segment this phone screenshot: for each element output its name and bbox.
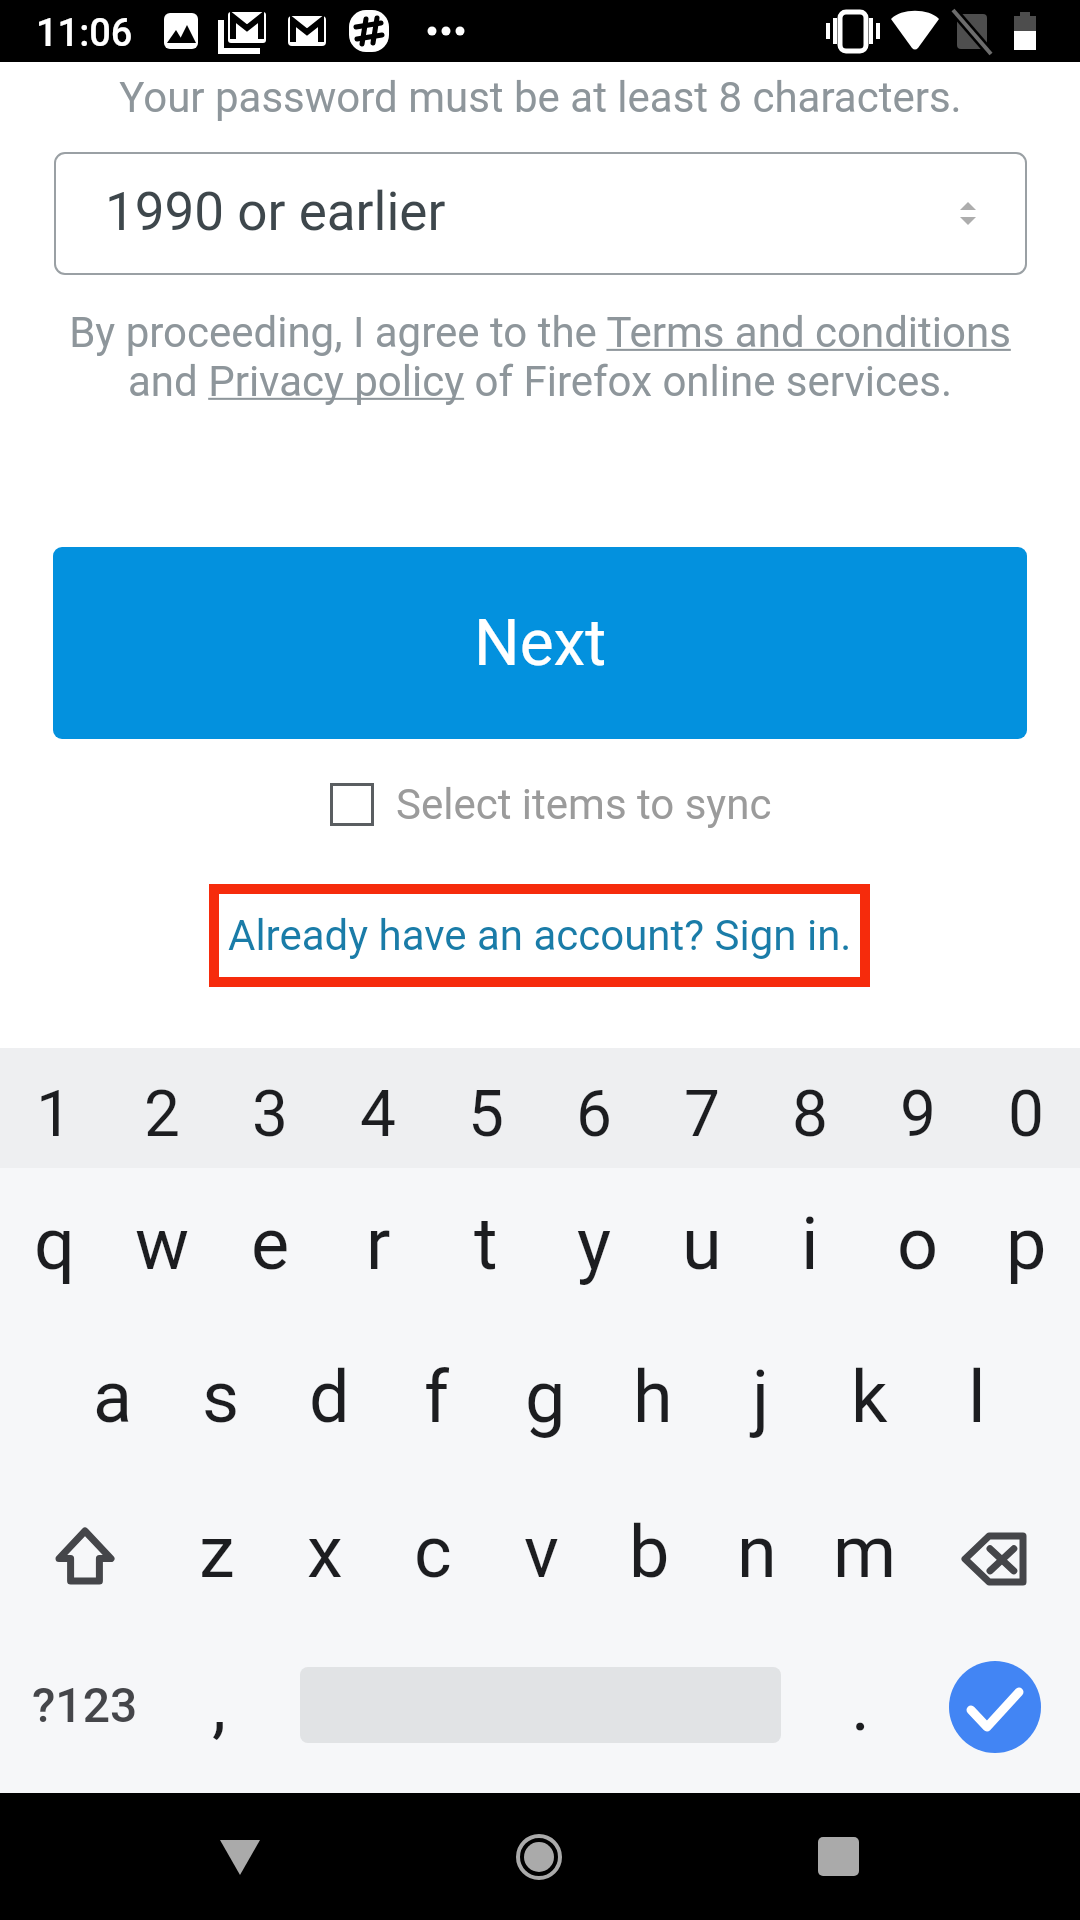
staticText: k bbox=[851, 1355, 888, 1439]
staticText: f bbox=[424, 1355, 450, 1439]
staticText: 1 bbox=[36, 1077, 72, 1152]
button[interactable]: Shift bbox=[10, 1481, 160, 1631]
staticText: Your password must be at least 8 charact… bbox=[119, 73, 962, 122]
staticText: 0 bbox=[1008, 1077, 1044, 1152]
button[interactable]: 1 bbox=[0, 1054, 108, 1174]
staticText: o bbox=[897, 1202, 939, 1286]
staticText: 9 bbox=[900, 1077, 936, 1152]
staticText: n bbox=[737, 1510, 777, 1594]
button[interactable]: 9 bbox=[864, 1054, 972, 1174]
button[interactable]: Next bbox=[53, 547, 1027, 739]
button[interactable]: 5 bbox=[432, 1054, 540, 1174]
staticText: e bbox=[251, 1202, 290, 1286]
button[interactable]: o bbox=[864, 1169, 972, 1319]
staticText: , bbox=[212, 1663, 227, 1747]
staticText: l bbox=[968, 1355, 986, 1439]
staticText: i bbox=[801, 1202, 819, 1286]
button[interactable]: 1990 or earlier bbox=[54, 152, 1027, 275]
button[interactable]: e bbox=[216, 1169, 324, 1319]
staticText: t bbox=[474, 1202, 498, 1286]
staticText: ?123 bbox=[32, 1677, 138, 1733]
button[interactable]: 0 bbox=[972, 1054, 1080, 1174]
button[interactable]: g bbox=[491, 1322, 599, 1472]
button[interactable]: t bbox=[432, 1169, 540, 1319]
button[interactable]: m bbox=[811, 1477, 919, 1627]
staticText: x bbox=[307, 1510, 343, 1594]
button[interactable]: w bbox=[108, 1169, 216, 1319]
button[interactable]: 3 bbox=[216, 1054, 324, 1174]
staticText: . bbox=[851, 1663, 870, 1747]
button[interactable]: a bbox=[59, 1322, 167, 1472]
button[interactable]: y bbox=[540, 1169, 648, 1319]
staticText: y bbox=[577, 1202, 612, 1286]
staticText: p bbox=[1006, 1202, 1047, 1286]
staticText: 6 bbox=[576, 1077, 612, 1152]
button[interactable]: Already have an account? Sign in. bbox=[209, 884, 870, 987]
button[interactable]: u bbox=[648, 1169, 756, 1319]
button[interactable]: k bbox=[815, 1322, 923, 1472]
button[interactable]: l bbox=[923, 1322, 1031, 1472]
staticText: m bbox=[833, 1510, 897, 1594]
button[interactable]: d bbox=[275, 1322, 383, 1472]
staticText: j bbox=[752, 1355, 770, 1439]
staticText: r bbox=[366, 1202, 391, 1286]
button[interactable]: q bbox=[0, 1169, 108, 1319]
button[interactable]: c bbox=[379, 1477, 487, 1627]
staticText: v bbox=[524, 1510, 559, 1594]
staticText: 1990 or earlier bbox=[105, 181, 446, 243]
staticText: c bbox=[414, 1510, 452, 1594]
staticText: h bbox=[633, 1355, 673, 1439]
staticText: Select items to sync bbox=[396, 780, 772, 828]
button[interactable]: . bbox=[810, 1622, 910, 1787]
button[interactable]: v bbox=[487, 1477, 595, 1627]
button[interactable]: h bbox=[599, 1322, 707, 1472]
button[interactable]: r bbox=[324, 1169, 432, 1319]
staticText: a bbox=[93, 1355, 133, 1439]
staticText: 11:06 bbox=[36, 11, 133, 56]
staticText: Already have an account? Sign in. bbox=[228, 911, 852, 960]
staticText: 4 bbox=[360, 1077, 396, 1152]
button[interactable]: z bbox=[163, 1477, 271, 1627]
button[interactable]: Backspace bbox=[919, 1484, 1069, 1634]
staticText: w bbox=[135, 1202, 190, 1286]
button[interactable]: s bbox=[167, 1322, 275, 1472]
staticText: 8 bbox=[792, 1077, 828, 1152]
staticText: z bbox=[199, 1510, 235, 1594]
staticText: 7 bbox=[684, 1077, 720, 1152]
button[interactable]: 4 bbox=[324, 1054, 432, 1174]
staticText: q bbox=[34, 1202, 75, 1286]
button[interactable]: Enter bbox=[949, 1661, 1041, 1753]
staticText: b bbox=[629, 1510, 670, 1594]
staticText: 3 bbox=[252, 1077, 288, 1152]
staticText: Next bbox=[474, 606, 607, 681]
button[interactable]: 7 bbox=[648, 1054, 756, 1174]
button[interactable]: Recent apps bbox=[768, 1793, 908, 1920]
button[interactable]: 6 bbox=[540, 1054, 648, 1174]
button[interactable]: , bbox=[165, 1622, 273, 1787]
button[interactable]: j bbox=[707, 1322, 815, 1472]
staticText: By proceeding, I agree to the Terms and … bbox=[40, 308, 1040, 406]
button[interactable]: ?123 bbox=[10, 1622, 160, 1787]
staticText: g bbox=[525, 1355, 566, 1439]
button[interactable]: Back bbox=[170, 1793, 310, 1920]
staticText: s bbox=[202, 1355, 240, 1439]
button[interactable]: n bbox=[703, 1477, 811, 1627]
button[interactable]: i bbox=[756, 1169, 864, 1319]
button[interactable]: 2 bbox=[108, 1054, 216, 1174]
button[interactable]: Select items to sync bbox=[330, 780, 772, 828]
staticText: u bbox=[682, 1202, 722, 1286]
button[interactable]: b bbox=[595, 1477, 703, 1627]
button[interactable]: x bbox=[271, 1477, 379, 1627]
staticText: 2 bbox=[144, 1077, 180, 1152]
button[interactable]: 8 bbox=[756, 1054, 864, 1174]
button[interactable]: p bbox=[972, 1169, 1080, 1319]
button[interactable]: f bbox=[383, 1322, 491, 1472]
staticText: d bbox=[309, 1355, 350, 1439]
staticText: 5 bbox=[468, 1077, 504, 1152]
button[interactable]: Home bbox=[469, 1793, 609, 1920]
